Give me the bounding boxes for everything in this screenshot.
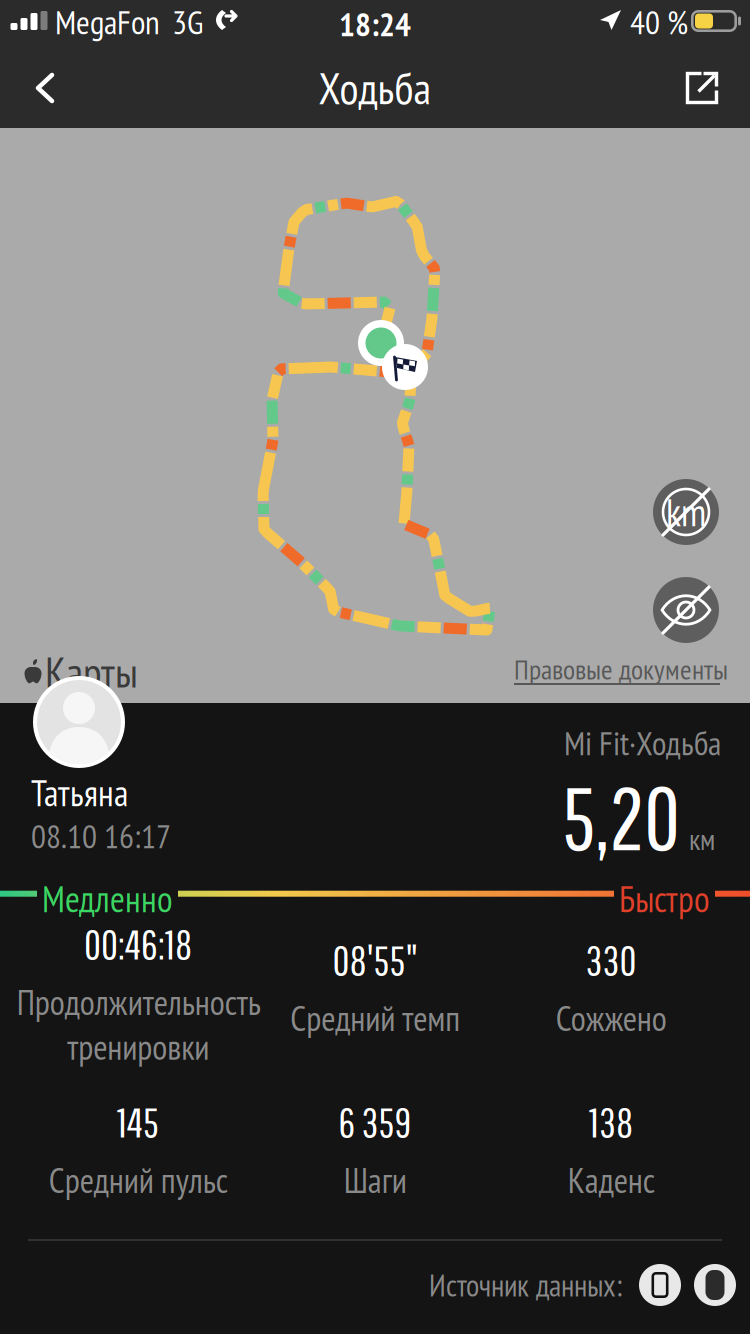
staticText: км [689,820,715,858]
staticText: 6 359 [338,1098,411,1146]
staticText: Татьяна [31,770,128,816]
button[interactable]: Back [0,48,90,128]
staticText: 08.10 16:17 [31,814,171,857]
staticText: 00:46:18 [84,920,192,968]
staticText: Каденс [567,1158,654,1202]
staticText: MegaFon [55,0,160,43]
staticText: 330 [585,936,636,984]
staticText: Быстро [619,876,710,922]
staticText: Средний темп [290,996,460,1040]
button[interactable]: Hide details [653,577,719,643]
staticText: Сожжено [555,996,666,1040]
staticText: 08'55" [332,936,417,984]
staticText: km [666,487,706,537]
staticText: 5,20 [562,766,680,868]
staticText: Mi Fit·Ходьба [564,721,721,764]
staticText: Правовые документы [514,651,728,687]
staticText: Продолжительность тренировки [16,980,259,1069]
staticText: 3G [172,0,203,43]
staticText: 138 [589,1098,633,1146]
staticText: Ходьба [318,59,431,116]
button[interactable]: Share [657,48,747,128]
staticText: Шаги [343,1158,406,1202]
staticText: Средний пульс [48,1158,227,1202]
staticText: Медленно [42,876,173,922]
button[interactable]: Hide kilometre markers [653,479,719,545]
staticText: Источник данных: [429,1265,622,1305]
staticText: Карты [45,644,138,699]
staticText: 18:24 [339,2,411,45]
staticText: 145 [117,1098,159,1146]
button[interactable]: Правовые документы [514,655,744,687]
staticText: 40 % [630,0,688,43]
